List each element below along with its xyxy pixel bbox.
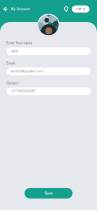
button[interactable]: Location	[63, 5, 70, 13]
staticText: +91 9166564846	[10, 90, 35, 93]
staticText: My Account	[11, 7, 30, 11]
staticText: Pune	[76, 8, 81, 11]
staticText: Email	[6, 61, 15, 65]
staticText: sandepkd@gmail.com	[10, 70, 42, 73]
staticText: Save	[44, 191, 52, 195]
staticText: Name	[10, 50, 18, 53]
staticText: Enter Your name	[6, 41, 32, 45]
button[interactable]: My Account	[0, 4, 33, 14]
button[interactable]: Save	[24, 188, 72, 198]
staticText: Contact	[6, 82, 18, 85]
button[interactable]: Pune	[72, 6, 89, 13]
